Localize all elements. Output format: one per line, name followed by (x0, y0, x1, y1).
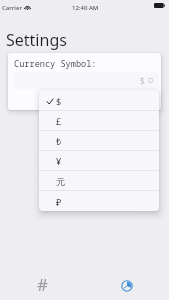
staticText: Settings (6, 29, 67, 51)
staticText: 12:40 AM (72, 4, 99, 12)
button[interactable]: ₽ (39, 191, 159, 211)
button[interactable]: ¥ (39, 150, 159, 170)
staticText: ₺ (56, 135, 62, 147)
button[interactable]: $ (39, 90, 159, 110)
button[interactable]: $ (14, 72, 159, 89)
staticText: Currency Symbol: (14, 58, 97, 70)
button[interactable]: Numbers (32, 273, 52, 293)
staticText: ¥ (56, 155, 62, 167)
staticText: ₽ (56, 196, 62, 208)
button[interactable]: £ (39, 110, 159, 130)
staticText: 元 (56, 176, 65, 187)
staticText: # (37, 273, 48, 293)
staticText: £ (56, 115, 62, 127)
button[interactable]: Timer (120, 279, 133, 292)
staticText: $ (56, 95, 62, 107)
staticText: Carrier (2, 4, 22, 12)
staticText: $ (140, 75, 145, 86)
button[interactable]: 元 (39, 170, 159, 190)
button[interactable]: ₺ (39, 130, 159, 150)
